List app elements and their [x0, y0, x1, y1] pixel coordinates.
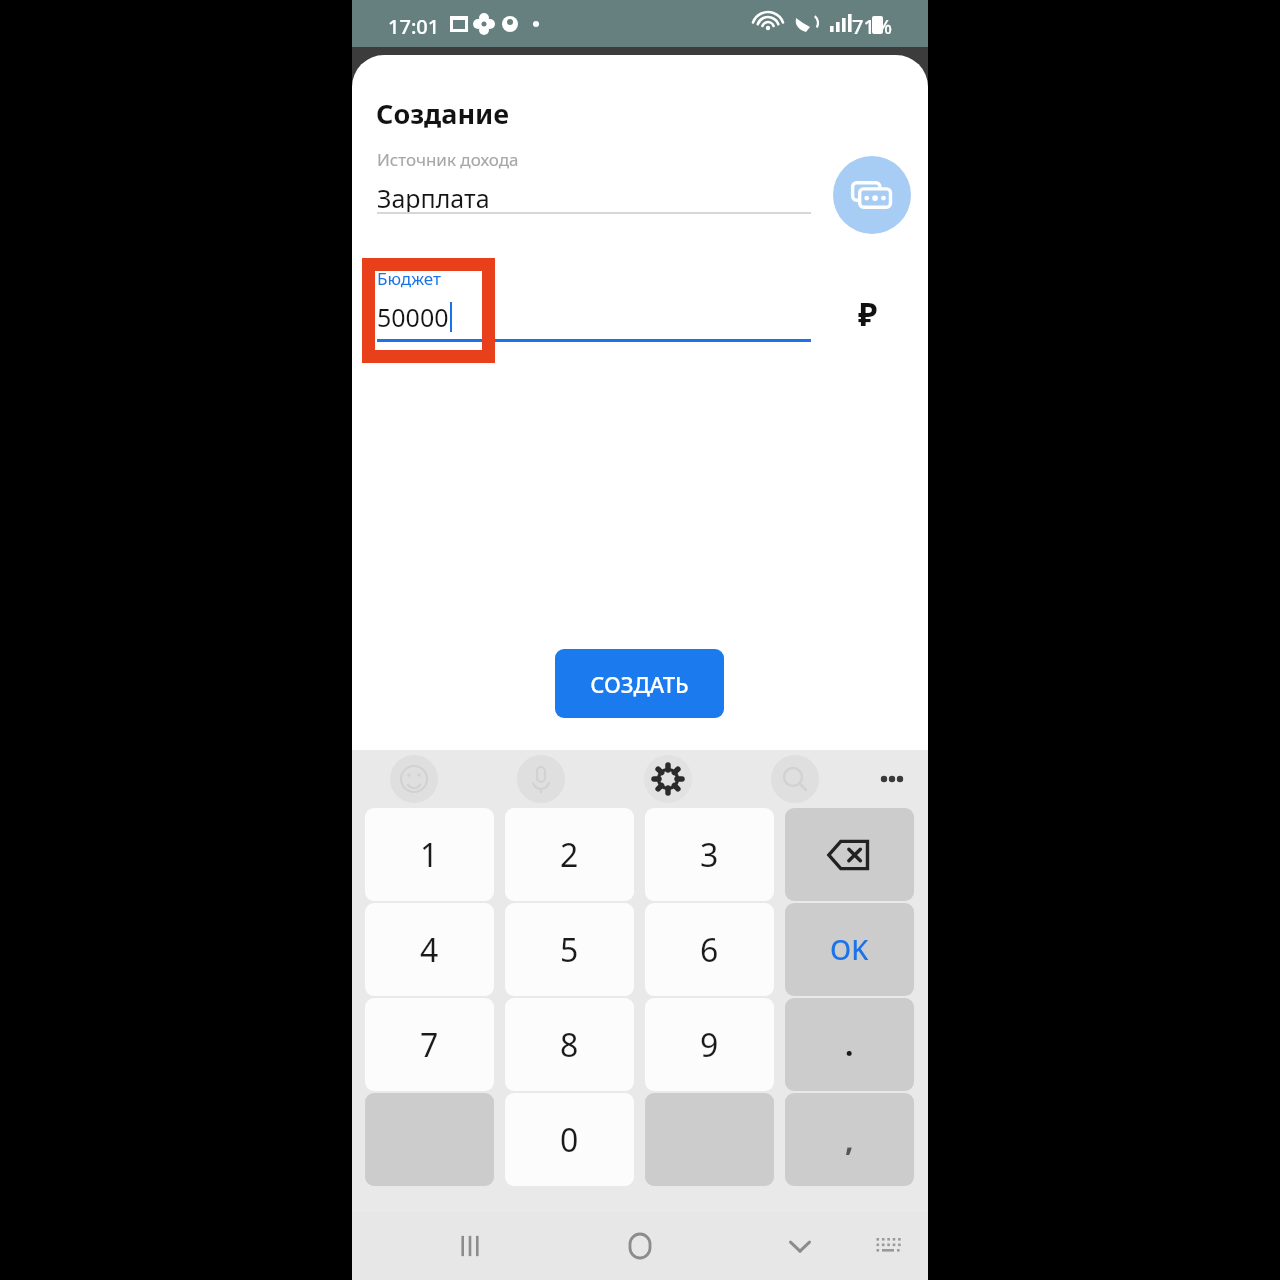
- staticText: Создание: [376, 95, 510, 132]
- button[interactable]: 6: [645, 903, 774, 996]
- button[interactable]: Выбрать источник дохода: [833, 156, 911, 234]
- button[interactable]: 3: [645, 808, 774, 901]
- button[interactable]: Эмодзи: [390, 755, 438, 803]
- button[interactable]: Удалить: [785, 808, 914, 901]
- staticText: OK: [830, 931, 869, 968]
- button[interactable]: Ещё: [868, 755, 916, 803]
- staticText: 1: [420, 833, 439, 877]
- button[interactable]: 9: [645, 998, 774, 1091]
- button[interactable]: Последние приложения: [446, 1222, 494, 1270]
- button[interactable]: Сменить клавиатуру: [864, 1222, 912, 1270]
- staticText: .: [845, 1024, 854, 1065]
- staticText: Бюджет: [377, 267, 441, 290]
- staticText: 50000: [377, 300, 449, 334]
- staticText: 4: [420, 928, 439, 972]
- button[interactable]: 2: [505, 808, 634, 901]
- staticText: 5: [560, 928, 579, 972]
- button[interactable]: 4: [365, 903, 494, 996]
- staticText: 6: [700, 928, 719, 972]
- button[interactable]: Поиск: [771, 755, 819, 803]
- staticText: Источник дохода: [377, 148, 519, 171]
- staticText: 17:01: [388, 13, 440, 40]
- button[interactable]: Настройки: [644, 755, 692, 803]
- button[interactable]: 7: [365, 998, 494, 1091]
- staticText: 3: [700, 833, 719, 877]
- button[interactable]: 5: [505, 903, 634, 996]
- staticText: ,: [845, 1119, 854, 1160]
- staticText: 7: [420, 1023, 439, 1067]
- staticText: Зарплата: [377, 181, 490, 215]
- staticText: ₽: [858, 292, 878, 336]
- staticText: 0: [560, 1118, 579, 1162]
- button[interactable]: 0: [505, 1093, 634, 1186]
- button[interactable]: ,: [785, 1093, 914, 1186]
- button[interactable]: СОЗДАТЬ: [555, 649, 724, 718]
- staticText: 2: [560, 833, 579, 877]
- button[interactable]: Скрыть клавиатуру: [776, 1222, 824, 1270]
- button[interactable]: 1: [365, 808, 494, 901]
- button[interactable]: .: [785, 998, 914, 1091]
- button[interactable]: OK: [785, 903, 914, 996]
- staticText: 9: [700, 1023, 719, 1067]
- staticText: СОЗДАТЬ: [590, 669, 689, 699]
- button[interactable]: Голосовой ввод: [517, 755, 565, 803]
- button[interactable]: Главный экран: [616, 1222, 664, 1270]
- button[interactable]: 8: [505, 998, 634, 1091]
- staticText: 71%: [852, 13, 892, 40]
- staticText: 8: [560, 1023, 579, 1067]
